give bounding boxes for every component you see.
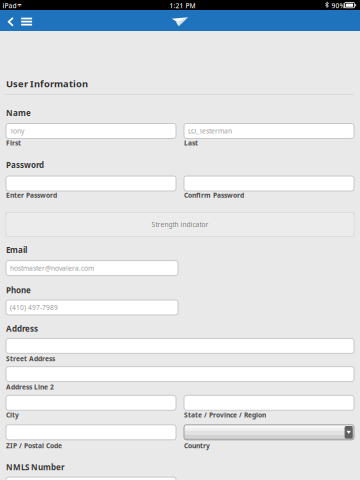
button[interactable]: Enter password bbox=[6, 176, 176, 191]
staticText: Email bbox=[6, 245, 27, 255]
button[interactable]: Phone bbox=[6, 300, 178, 315]
staticText: State / Province / Region bbox=[184, 410, 266, 419]
staticText: Enter Password bbox=[6, 191, 57, 200]
staticText: Tony bbox=[10, 127, 24, 135]
staticText: (410) 497-7989 bbox=[10, 303, 58, 312]
staticText: Password bbox=[6, 159, 44, 170]
button[interactable]: Menu bbox=[18, 11, 36, 32]
staticText: Strength indicator bbox=[151, 220, 208, 229]
button[interactable]: Address line 2 bbox=[6, 367, 354, 382]
staticText: Address bbox=[6, 323, 38, 334]
staticText: Confirm Password bbox=[184, 191, 244, 200]
staticText: Country bbox=[184, 441, 210, 450]
staticText: 1:21 PM bbox=[169, 1, 195, 10]
staticText: LO_Testerman bbox=[188, 127, 232, 135]
staticText: User Information bbox=[6, 77, 88, 90]
staticText: hostmaster@novalera.com bbox=[10, 264, 94, 273]
staticText: Address Line 2 bbox=[6, 382, 54, 391]
button[interactable]: State, province or region bbox=[184, 395, 354, 410]
staticText: Street Address bbox=[6, 354, 55, 363]
staticText: Last bbox=[184, 138, 198, 147]
staticText: NMLS Number bbox=[6, 462, 65, 472]
staticText: First bbox=[6, 138, 21, 147]
button[interactable]: Email bbox=[6, 261, 178, 276]
staticText: Phone bbox=[6, 285, 31, 295]
staticText: iPad bbox=[2, 1, 16, 10]
button[interactable]: City bbox=[6, 395, 176, 410]
staticText: Name bbox=[6, 107, 31, 118]
staticText: ZIP / Postal Code bbox=[6, 441, 62, 450]
button[interactable]: Confirm password bbox=[184, 176, 354, 191]
staticText: City bbox=[6, 410, 19, 419]
button[interactable]: Country bbox=[184, 425, 354, 440]
button[interactable]: Back bbox=[3, 11, 17, 32]
button[interactable]: ZIP or postal code bbox=[6, 425, 176, 440]
button[interactable]: NMLS number bbox=[6, 477, 176, 480]
button[interactable]: Street address bbox=[6, 338, 354, 353]
button[interactable]: First name bbox=[6, 123, 176, 138]
button[interactable]: Last name bbox=[184, 123, 354, 138]
staticText: 90% bbox=[331, 1, 345, 10]
